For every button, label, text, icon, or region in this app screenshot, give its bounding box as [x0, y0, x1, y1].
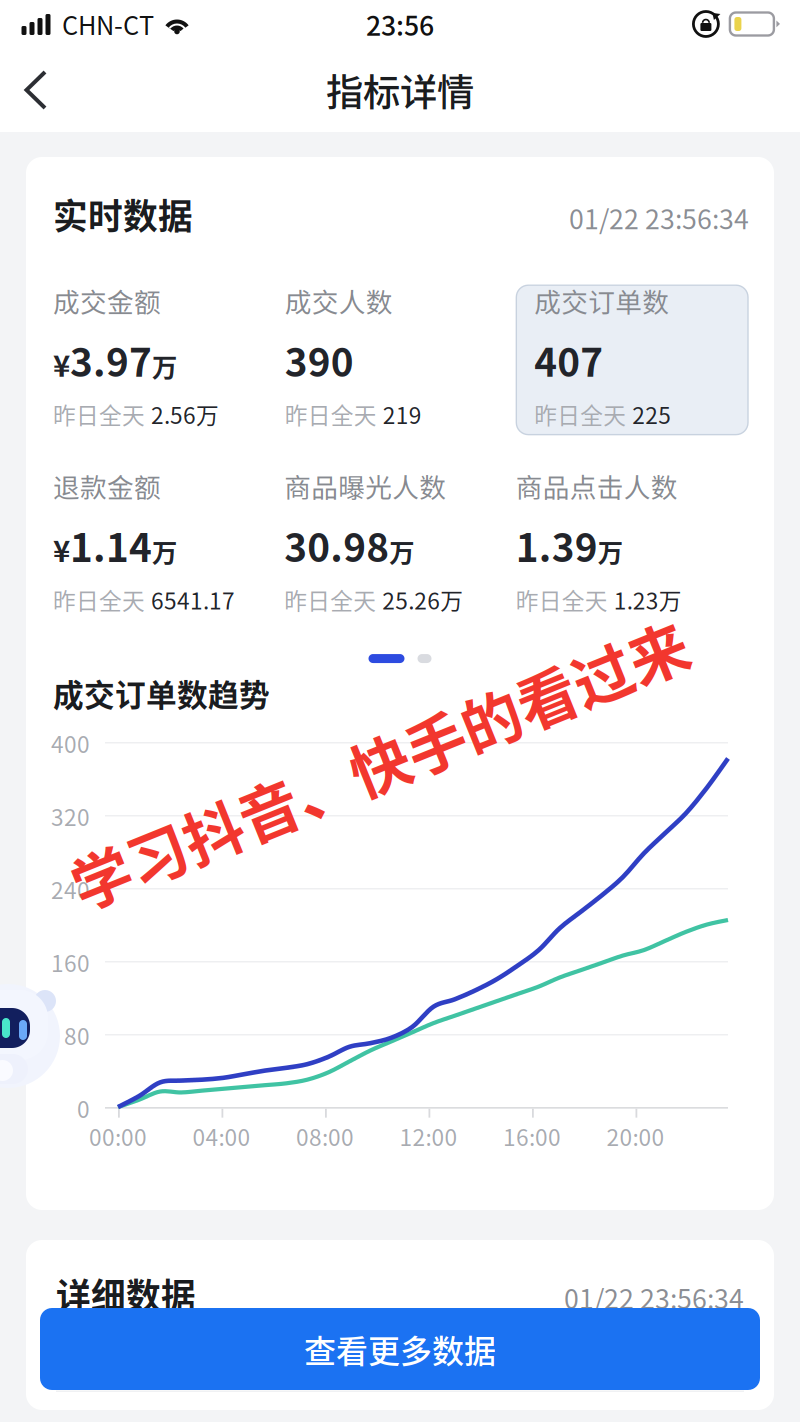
- staticText: 成交金额: [53, 281, 161, 320]
- staticText: 万: [152, 533, 177, 569]
- staticText: 12:00: [399, 1120, 457, 1152]
- button[interactable]: 返回: [0, 55, 72, 125]
- staticText: 详细数据: [56, 1269, 196, 1319]
- staticText: 万: [389, 533, 414, 569]
- staticText: 学习抖音、快手的看过来: [50, 724, 710, 810]
- staticText: 昨日全天: [285, 398, 377, 431]
- staticText: ¥: [53, 343, 70, 385]
- staticText: 30.98: [284, 517, 389, 573]
- staticText: 万: [152, 347, 177, 384]
- staticText: 昨日全天: [53, 398, 145, 431]
- staticText: 00:00: [89, 1120, 147, 1152]
- staticText: 指标详情: [326, 63, 474, 117]
- staticText: 225: [632, 398, 671, 431]
- staticText: 240: [51, 873, 90, 905]
- staticText: 1.23万: [614, 583, 682, 616]
- staticText: 查看更多数据: [304, 1326, 496, 1372]
- staticText: 160: [51, 946, 90, 978]
- staticText: 01/22 23:56:34: [569, 198, 749, 237]
- staticText: 407: [534, 332, 603, 388]
- staticText: 实时数据: [53, 189, 193, 239]
- staticText: 219: [383, 398, 422, 431]
- staticText: 390: [285, 332, 354, 388]
- staticText: 商品曝光人数: [284, 467, 446, 505]
- staticText: 16:00: [503, 1120, 561, 1152]
- staticText: 400: [51, 727, 90, 759]
- staticText: 6541.17: [151, 583, 235, 616]
- staticText: 20:00: [606, 1120, 664, 1152]
- staticText: 1.39: [516, 517, 598, 573]
- staticText: 退款金额: [53, 467, 161, 505]
- staticText: 昨日全天: [534, 398, 626, 431]
- staticText: 320: [51, 800, 90, 832]
- button[interactable]: 查看更多数据: [40, 1308, 760, 1390]
- staticText: 08:00: [296, 1120, 354, 1152]
- staticText: 成交订单数趋势: [53, 671, 270, 715]
- staticText: 80: [64, 1019, 90, 1051]
- staticText: 商品点击人数: [516, 467, 678, 505]
- staticText: 3.97: [70, 332, 152, 388]
- staticText: 0: [77, 1092, 90, 1124]
- staticText: 25.26万: [382, 583, 463, 616]
- staticText: 万: [598, 533, 623, 569]
- staticText: 04:00: [192, 1120, 250, 1152]
- staticText: CHN-CT: [62, 6, 154, 42]
- staticText: 01/22 23:56:34: [564, 1278, 744, 1317]
- staticText: 昨日全天: [284, 583, 376, 616]
- staticText: ¥: [53, 528, 70, 571]
- staticText: 1.14: [70, 517, 152, 573]
- staticText: 成交人数: [285, 281, 393, 320]
- staticText: 昨日全天: [516, 583, 608, 616]
- staticText: 2.56万: [151, 398, 219, 431]
- staticText: 成交订单数: [534, 281, 669, 320]
- staticText: 23:56: [366, 5, 434, 43]
- staticText: 昨日全天: [53, 583, 145, 616]
